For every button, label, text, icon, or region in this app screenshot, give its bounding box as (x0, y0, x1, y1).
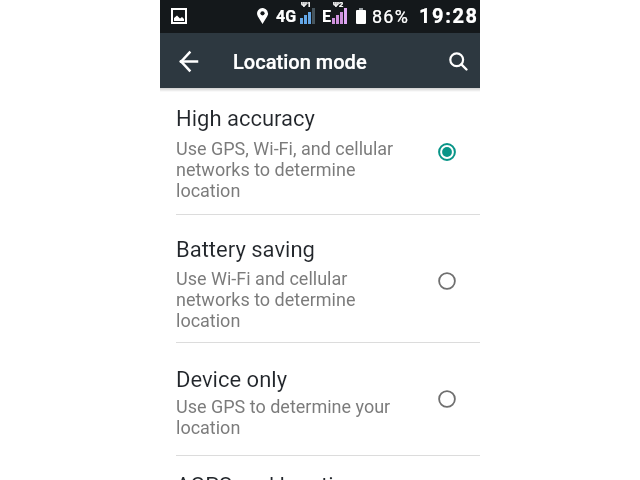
staticText: 86% (372, 6, 410, 27)
staticText: AGPS and location (176, 473, 359, 480)
staticText: E (322, 7, 331, 26)
button[interactable] (440, 43, 476, 79)
button[interactable]: Battery saving (160, 215, 480, 342)
staticText: Ψ2 (333, 0, 344, 9)
button[interactable]: High accuracy (160, 92, 480, 214)
button[interactable]: AGPS and location (160, 456, 480, 480)
staticText: Use GPS, Wi-Fi, and cellular networks to… (176, 138, 394, 201)
staticText: High accuracy (176, 106, 316, 132)
staticText: 19:28 (419, 4, 479, 27)
staticText: Ψ1 (301, 0, 312, 9)
staticText: Use Wi-Fi and cellular networks to deter… (176, 268, 356, 331)
staticText: Use GPS to determine your location (176, 396, 391, 438)
staticText: Location mode (233, 50, 367, 73)
staticText: Battery saving (176, 237, 315, 263)
button[interactable]: Device only (160, 343, 480, 455)
staticText: 4G (276, 7, 297, 26)
staticText: Device only (176, 367, 288, 393)
button[interactable] (173, 45, 205, 77)
